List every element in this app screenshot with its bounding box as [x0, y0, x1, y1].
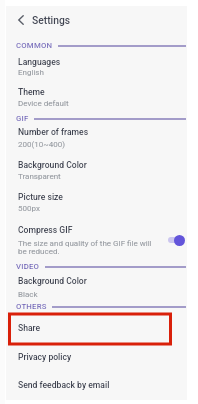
button[interactable]: Compress GIF: [166, 232, 186, 248]
staticText: Number of frames: [18, 127, 89, 137]
staticText: Send feedback by email: [18, 380, 110, 390]
button[interactable]: Send feedback by email: [18, 380, 186, 390]
staticText: Transparent: [18, 172, 61, 181]
button[interactable]: Compress GIF: [18, 225, 186, 235]
button[interactable]: Number of frames: [18, 127, 186, 137]
staticText: Picture size: [18, 192, 63, 202]
staticText: Device default: [18, 99, 69, 108]
staticText: Share: [18, 323, 41, 333]
staticText: GIF: [16, 114, 29, 123]
staticText: 500px: [18, 204, 40, 213]
staticText: Background Color: [18, 160, 87, 170]
staticText: Settings: [32, 14, 71, 26]
staticText: COMMON: [16, 41, 53, 50]
button[interactable]: Background Color: [18, 160, 186, 170]
staticText: The size and quality of the GIF file wil…: [18, 239, 154, 256]
staticText: Background Color: [18, 276, 87, 286]
staticText: Privacy policy: [18, 352, 72, 362]
button[interactable]: Background Color: [18, 276, 186, 286]
staticText: Black: [18, 290, 38, 299]
staticText: Languages: [18, 57, 61, 67]
button[interactable]: Theme: [18, 87, 186, 97]
button[interactable]: Languages: [18, 57, 186, 67]
staticText: 200(10~400): [18, 140, 65, 149]
staticText: Compress GIF: [18, 225, 73, 235]
button[interactable]: Privacy policy: [18, 352, 186, 362]
button[interactable]: Picture size: [18, 192, 186, 202]
staticText: VIDEO: [16, 262, 40, 271]
button[interactable]: Back: [12, 11, 30, 29]
staticText: Theme: [18, 87, 45, 97]
button[interactable]: Share: [18, 323, 186, 333]
staticText: English: [18, 68, 44, 77]
staticText: OTHERS: [16, 302, 47, 311]
